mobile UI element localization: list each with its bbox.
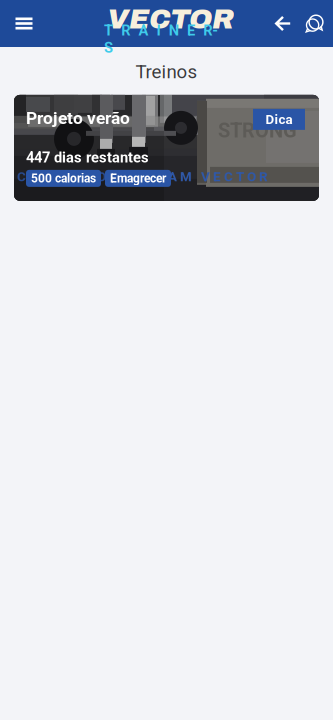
button[interactable]: STRONG: [14, 95, 319, 201]
staticText: STRONG: [218, 119, 297, 142]
staticText: C O N S U L T O R I A T E A M V E C T O …: [17, 169, 268, 184]
staticText: Projeto verão: [26, 108, 130, 128]
staticText: TRAINERS: [104, 22, 229, 39]
button[interactable]: Back: [267, 0, 299, 47]
staticText: Dica: [265, 112, 292, 127]
staticText: 500 calorias: [31, 171, 96, 185]
button[interactable]: Messages: [298, 0, 330, 47]
button[interactable]: Menu: [0, 0, 48, 47]
staticText: 447 dias restantes: [26, 149, 149, 166]
staticText: VECTOR: [107, 4, 234, 34]
staticText: Emagrecer: [110, 171, 166, 185]
staticText: Treinos: [135, 61, 197, 83]
